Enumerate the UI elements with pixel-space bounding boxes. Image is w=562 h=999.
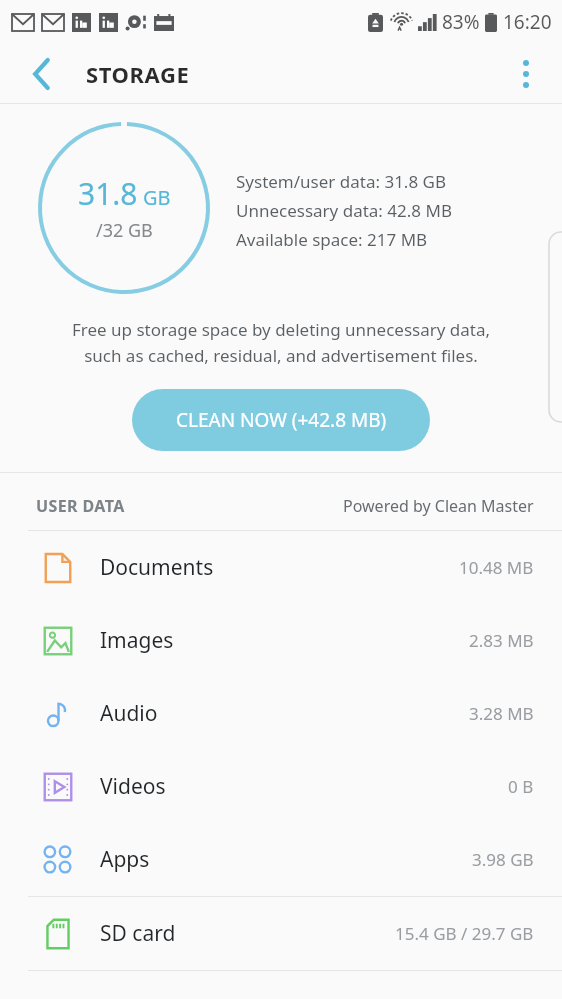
button[interactable]: Audio	[0, 677, 562, 750]
staticText: System/user data: 31.8 GB	[236, 170, 446, 193]
button[interactable]: More options	[502, 50, 550, 98]
staticText: Powered by Clean Master	[343, 495, 534, 517]
button[interactable]: SD card	[0, 897, 562, 970]
staticText: /32 GB	[96, 218, 153, 243]
staticText: 16:20	[503, 9, 552, 35]
staticText: 31.8	[78, 173, 138, 214]
staticText: Unnecessary data: 42.8 MB	[236, 199, 452, 222]
staticText: CLEAN NOW (+42.8 MB)	[176, 407, 387, 433]
staticText: Free up storage space by deleting unnece…	[20, 318, 542, 367]
button[interactable]: Images	[0, 604, 562, 677]
staticText: Audio	[100, 699, 158, 728]
button[interactable]: CLEAN NOW (+42.8 MB)	[132, 389, 430, 451]
staticText: 3.98 GB	[472, 848, 534, 871]
button[interactable]: Videos	[0, 750, 562, 823]
staticText: 0 B	[508, 775, 534, 798]
button[interactable]: Back	[18, 50, 66, 98]
staticText: 83%	[442, 9, 480, 35]
staticText: 10.48 MB	[459, 556, 534, 579]
button[interactable]: Documents	[0, 531, 562, 604]
staticText: 2.83 MB	[469, 629, 534, 652]
staticText: SD card	[100, 919, 176, 948]
staticText: STORAGE	[86, 59, 190, 89]
staticText: Documents	[100, 553, 214, 582]
staticText: 3.28 MB	[469, 702, 534, 725]
staticText: Available space: 217 MB	[236, 228, 428, 251]
staticText: USER DATA	[36, 495, 125, 517]
button[interactable]: Apps	[0, 823, 562, 896]
staticText: Apps	[100, 845, 150, 874]
staticText: Images	[100, 626, 174, 655]
staticText: 15.4 GB / 29.7 GB	[395, 922, 534, 945]
staticText: GB	[143, 184, 171, 211]
staticText: Videos	[100, 772, 166, 801]
